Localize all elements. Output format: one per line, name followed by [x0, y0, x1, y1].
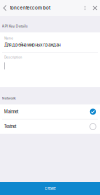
button[interactable]: Back [0, 0, 10, 16]
staticText: Для дрейна мирных граждан [4, 42, 60, 47]
staticText: API Key Details [2, 24, 28, 28]
staticText: Create [44, 186, 55, 191]
staticText: Description [4, 55, 22, 59]
staticText: toncenter.com bot [10, 5, 50, 11]
button[interactable]: More [80, 0, 90, 16]
staticText: Testnet [4, 124, 16, 129]
button[interactable]: Mainnet [0, 104, 100, 119]
button[interactable]: Create [0, 182, 100, 195]
staticText: Name [4, 37, 13, 40]
staticText: Mainnet [4, 109, 18, 114]
button[interactable]: Testnet [0, 119, 100, 134]
button[interactable]: Close [90, 0, 100, 16]
staticText: Network [2, 96, 16, 100]
